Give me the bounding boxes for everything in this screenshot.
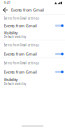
staticText: Events from Gmail <box>4 69 37 74</box>
staticText: Events from Gmail settings <box>4 61 39 65</box>
button[interactable]: Visibility <box>0 29 65 40</box>
staticText: Events from Gmail <box>4 23 37 28</box>
button[interactable]: Back <box>1 6 10 14</box>
staticText: Default visibility <box>4 82 26 86</box>
staticText: Default visibility <box>4 35 26 39</box>
button[interactable]: Events from Gmail <box>0 68 65 76</box>
staticText: 9:41 <box>4 1 11 5</box>
staticText: Events from Gmail <box>4 51 37 57</box>
staticText: Events from Gmail settings <box>4 43 39 47</box>
staticText: Visibility <box>4 30 18 35</box>
staticText: Visibility <box>4 77 18 82</box>
staticText: Events from Gmail <box>11 7 44 13</box>
staticText: Events from Gmail settings <box>4 17 39 20</box>
button[interactable]: Events from Gmail <box>0 22 65 29</box>
button[interactable]: Visibility <box>0 76 65 87</box>
button[interactable]: Events from Gmail <box>0 50 65 58</box>
